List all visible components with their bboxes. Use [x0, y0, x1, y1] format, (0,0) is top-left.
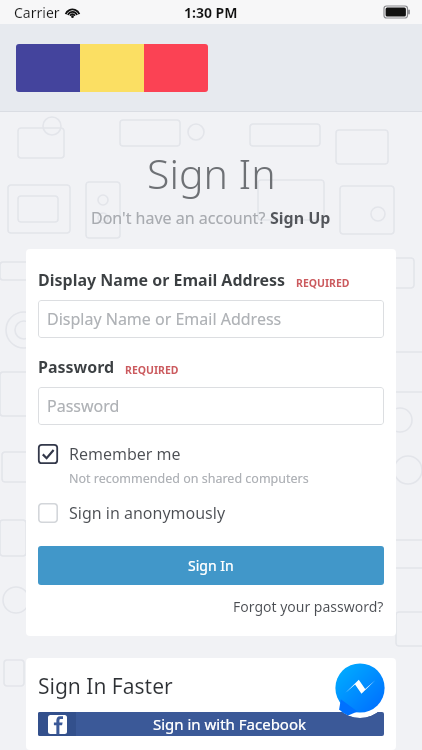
button[interactable]: Sign in anonymously: [38, 502, 384, 524]
staticText: Sign In: [188, 556, 234, 575]
staticText: REQUIRED: [296, 276, 350, 290]
staticText: Display Name or Email Address: [38, 269, 286, 291]
staticText: Password: [38, 356, 115, 378]
staticText: Sign in with Facebook: [153, 714, 307, 734]
staticText: Sign In Faster: [38, 672, 173, 701]
staticText: Sign in anonymously: [69, 502, 226, 524]
button[interactable]: Sign Up: [270, 207, 331, 229]
staticText: Password: [47, 395, 120, 417]
button[interactable]: Open Messenger chat: [330, 658, 390, 718]
button[interactable]: [16, 44, 208, 92]
staticText: REQUIRED: [125, 363, 179, 377]
button[interactable]: Display Name or Email Address: [38, 300, 384, 338]
staticText: 1:30 PM: [184, 3, 238, 22]
button[interactable]: Remember me: [38, 443, 384, 465]
staticText: Forgot your password?: [233, 597, 384, 616]
button[interactable]: Sign In: [38, 546, 384, 585]
staticText: Carrier: [14, 3, 60, 22]
staticText: Remember me: [69, 443, 181, 465]
button[interactable]: Password: [38, 387, 384, 425]
staticText: Display Name or Email Address: [47, 308, 282, 330]
staticText: Sign Up: [270, 207, 331, 229]
button[interactable]: Forgot your password?: [233, 597, 384, 616]
staticText: Sign In: [147, 145, 276, 201]
staticText: Don't have an account?: [91, 207, 270, 229]
button[interactable]: Sign in with Facebook: [38, 712, 384, 736]
staticText: Not recommended on shared computers: [69, 470, 309, 487]
